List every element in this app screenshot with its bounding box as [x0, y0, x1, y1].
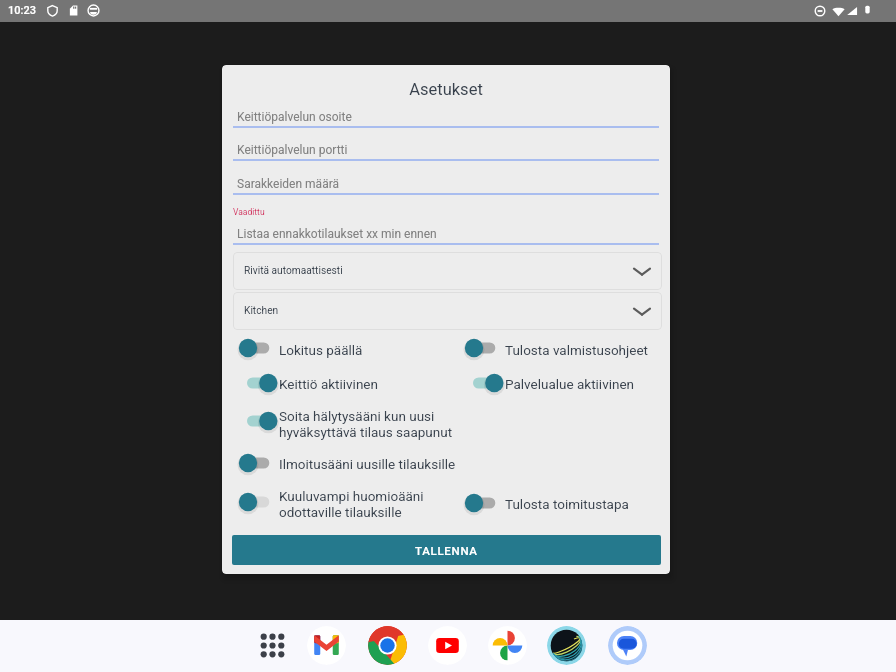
button[interactable]	[240, 491, 449, 513]
button[interactable]: Listaa ennakkotilaukset xx min ennen	[233, 223, 659, 245]
button[interactable]: Palvelualue aktiivinen	[505, 376, 635, 392]
staticText: Keittiöpalvelun osoite	[237, 110, 352, 124]
button[interactable]	[466, 492, 670, 514]
button[interactable]: TALLENNA	[232, 535, 661, 565]
button[interactable]: Kuuluvampi huomioääni odottaville tilauk…	[279, 488, 424, 520]
button[interactable]: Messages	[608, 626, 647, 665]
button[interactable]: Tulosta valmistusohjeet	[505, 342, 649, 358]
button[interactable]: Keittiö aktiivinen	[279, 376, 378, 392]
button[interactable]: Photos	[488, 626, 527, 665]
button[interactable]: Nebula	[547, 626, 586, 665]
button[interactable]	[466, 337, 670, 359]
button[interactable]: Keittiöpalvelun portti	[233, 139, 659, 161]
staticText: Vaadittu	[233, 207, 265, 217]
button[interactable]: Tulosta toimitustapa	[505, 496, 629, 512]
button[interactable]: Rivitä automaattisesti	[233, 252, 662, 290]
button[interactable]: Chrome	[368, 626, 407, 665]
button[interactable]	[240, 337, 449, 359]
button[interactable]	[247, 372, 449, 394]
button[interactable]: Soita hälytysääni kun uusi hyväksyttävä …	[279, 408, 453, 440]
button[interactable]: Sarakkeiden määrä	[233, 173, 659, 195]
button[interactable]: Ilmoitusääni uusille tilauksille	[279, 456, 456, 472]
staticText: Keittiöpalvelun portti	[237, 143, 348, 157]
staticText: Sarakkeiden määrä	[237, 177, 340, 191]
staticText: Asetukset	[222, 80, 670, 99]
button[interactable]: All apps	[253, 626, 292, 665]
button[interactable]: Gmail	[307, 626, 346, 665]
staticText: Rivitä automaattisesti	[244, 265, 343, 277]
staticText: Listaa ennakkotilaukset xx min ennen	[237, 227, 437, 241]
staticText: 10:23	[8, 4, 36, 17]
button[interactable]: Lokitus päällä	[279, 342, 363, 358]
button[interactable]: YouTube	[428, 626, 467, 665]
button[interactable]	[240, 452, 449, 474]
button[interactable]: Keittiöpalvelun osoite	[233, 106, 659, 128]
button[interactable]: Kitchen	[233, 292, 662, 330]
button[interactable]	[247, 410, 449, 432]
staticText: Kitchen	[244, 305, 279, 317]
button[interactable]	[473, 372, 670, 394]
staticText: TALLENNA	[415, 544, 478, 557]
